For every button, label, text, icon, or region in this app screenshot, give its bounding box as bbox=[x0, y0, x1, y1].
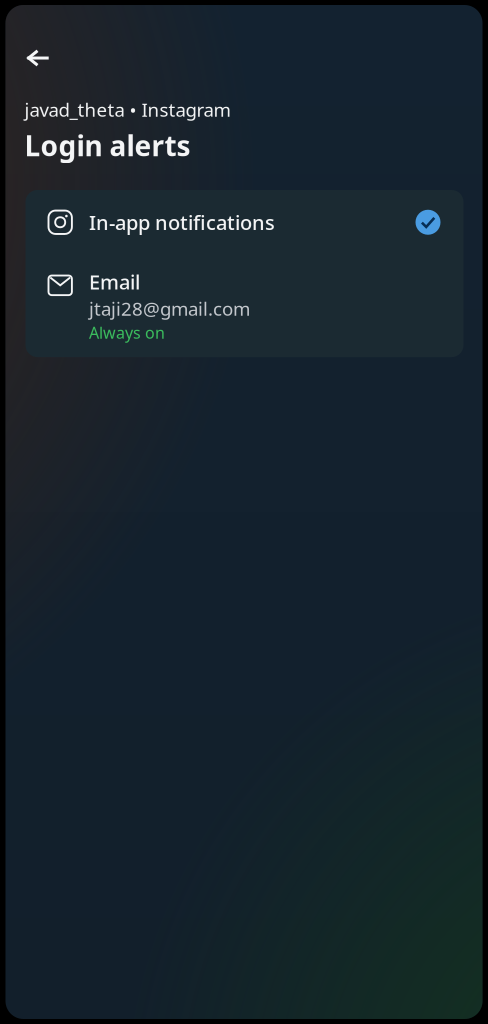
staticText: Email bbox=[89, 268, 140, 295]
button[interactable]: In-app notifications bbox=[25, 190, 463, 236]
button[interactable]: Email bbox=[25, 268, 463, 357]
staticText: In-app notifications bbox=[89, 209, 275, 236]
staticText: jtaji28@gmail.com bbox=[89, 296, 250, 321]
staticText: javad_theta • Instagram bbox=[24, 97, 230, 122]
staticText: Login alerts bbox=[24, 127, 190, 164]
staticText: Always on bbox=[89, 322, 165, 343]
button[interactable]: Back bbox=[5, 38, 64, 79]
